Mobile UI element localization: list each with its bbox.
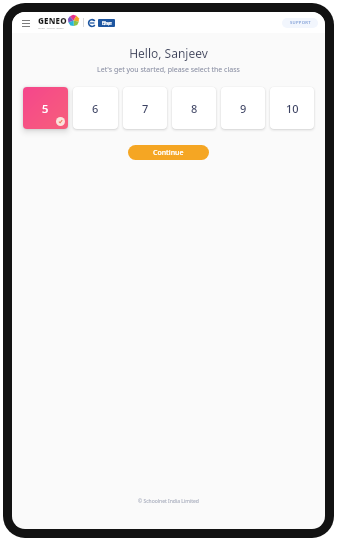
staticText: LEARN · TEACH · GROW bbox=[38, 27, 64, 30]
staticText: Continue bbox=[153, 148, 184, 158]
staticText: 5 bbox=[42, 101, 49, 116]
staticText: 10 bbox=[286, 101, 299, 116]
staticText: 8 bbox=[191, 101, 198, 116]
staticText: 6 bbox=[92, 101, 99, 116]
staticText: SUPPORT bbox=[290, 20, 311, 26]
button[interactable]: Menu bbox=[19, 16, 33, 30]
staticText: 7 bbox=[142, 101, 149, 116]
staticText: शिक्षा bbox=[102, 20, 112, 26]
staticText: Let's get you started, please select the… bbox=[97, 65, 240, 75]
button[interactable]: 7 bbox=[123, 87, 167, 129]
button[interactable]: 5 bbox=[23, 87, 68, 129]
button[interactable]: Continue bbox=[128, 145, 209, 160]
staticText: © Schoolnet India Limited bbox=[138, 498, 199, 505]
staticText: GENEO bbox=[38, 15, 67, 26]
staticText: Hello, Sanjeev bbox=[129, 45, 208, 61]
button[interactable]: 8 bbox=[172, 87, 216, 129]
button[interactable]: 10 bbox=[270, 87, 314, 129]
button[interactable]: 9 bbox=[221, 87, 265, 129]
button[interactable]: SUPPORT bbox=[282, 18, 318, 28]
button[interactable]: 6 bbox=[73, 87, 118, 129]
staticText: 9 bbox=[240, 101, 247, 116]
